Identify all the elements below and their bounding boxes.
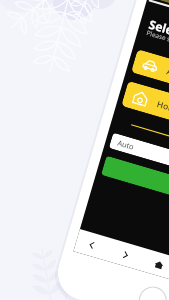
button[interactable]: Go <box>101 156 169 222</box>
button[interactable]: Home <box>121 81 169 153</box>
button[interactable]: Home button <box>135 283 169 300</box>
button[interactable] <box>151 0 169 46</box>
staticText: Auto <box>116 137 135 152</box>
button[interactable]: Auto <box>109 133 169 195</box>
button[interactable]: Home <box>145 250 169 278</box>
staticText: Select <box>147 16 169 41</box>
staticText: Auto <box>165 65 169 82</box>
button[interactable]: Auto <box>131 49 169 120</box>
button[interactable]: Forward <box>112 240 139 269</box>
staticText: Home <box>155 98 169 116</box>
staticText: Please select an option <box>145 28 169 56</box>
button[interactable]: Back <box>78 230 106 259</box>
